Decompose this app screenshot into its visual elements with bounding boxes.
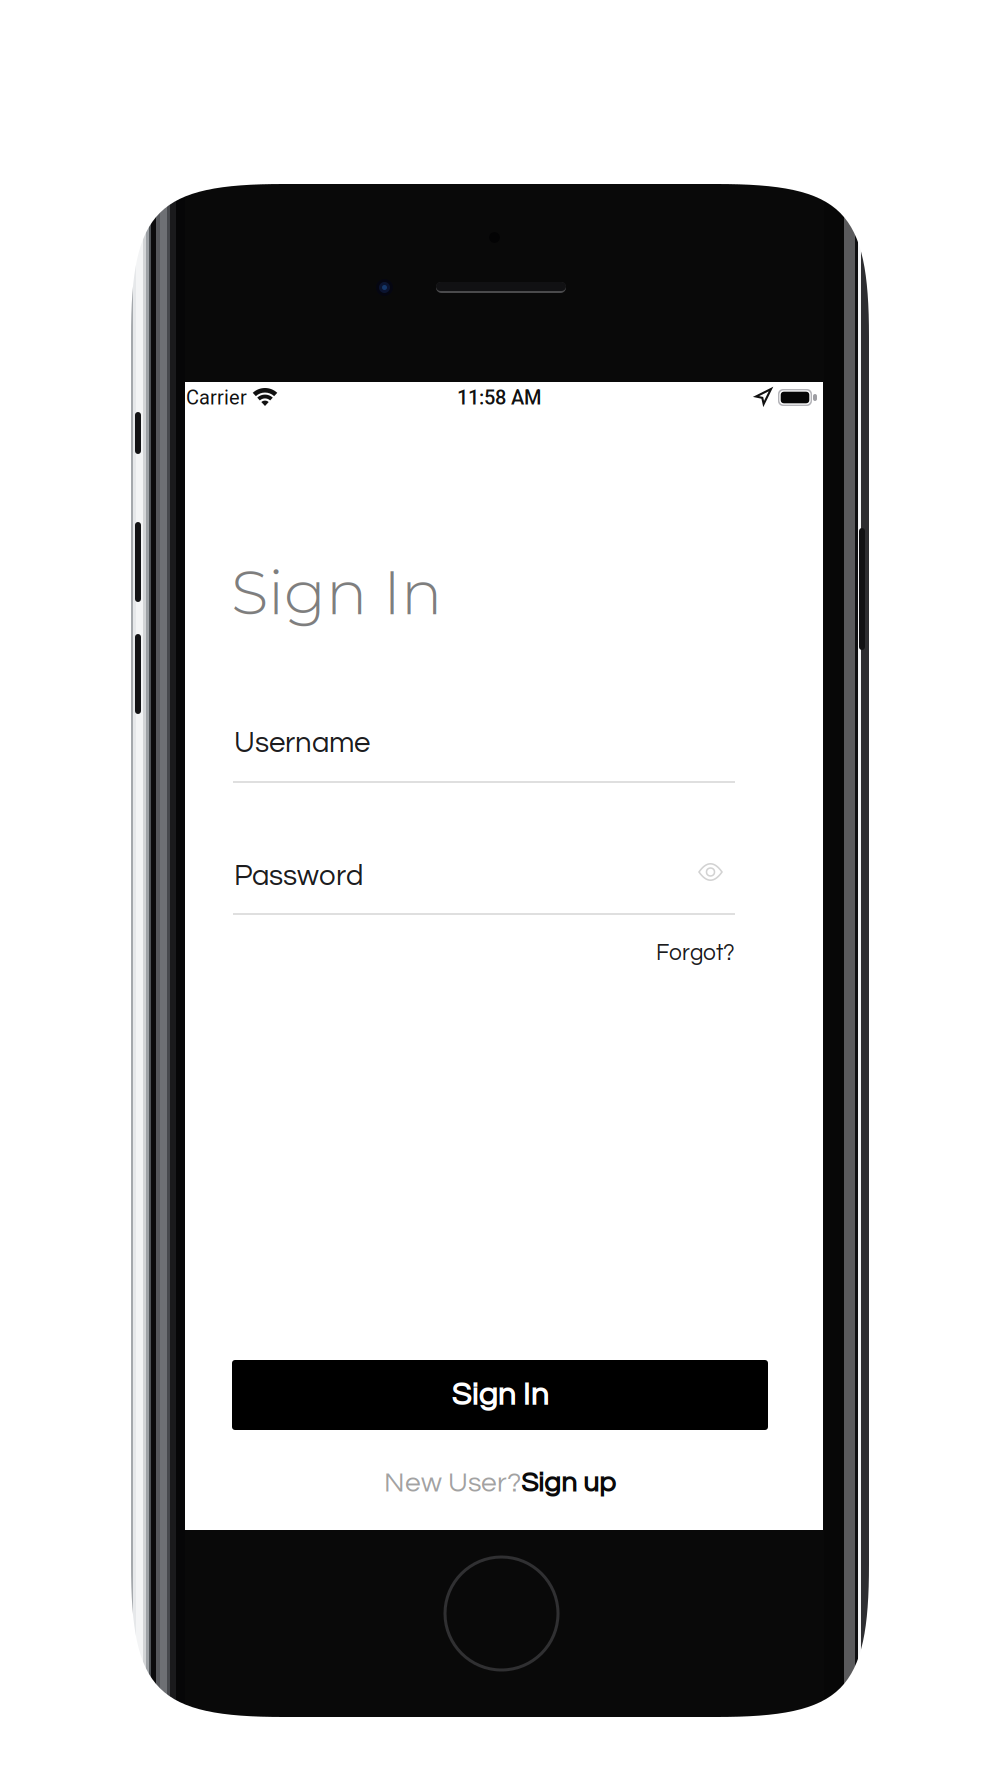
- button[interactable]: New User?: [185, 1458, 815, 1508]
- staticText: Forgot?: [656, 941, 735, 965]
- staticText: Sign up: [521, 1469, 616, 1497]
- button[interactable]: Show password: [687, 852, 734, 892]
- staticText: 11:58 AM: [457, 386, 541, 409]
- button[interactable]: Forgot?: [615, 932, 735, 974]
- button[interactable]: Password: [233, 861, 735, 921]
- button[interactable]: Username: [233, 728, 735, 789]
- staticText: New User?: [384, 1469, 521, 1497]
- button[interactable]: Sign In: [232, 1360, 768, 1430]
- staticText: Sign In: [451, 1378, 548, 1411]
- staticText: Username: [234, 728, 370, 758]
- staticText: Carrier: [186, 386, 247, 409]
- staticText: Sign In: [231, 555, 442, 630]
- staticText: Password: [234, 861, 363, 891]
